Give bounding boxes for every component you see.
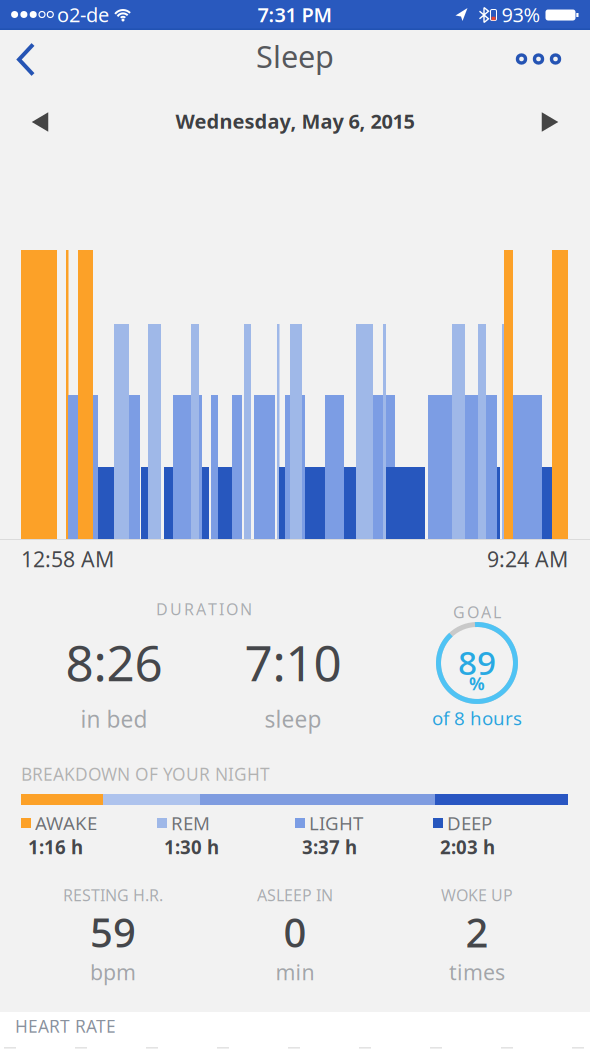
staticText: 1:30 h [164, 835, 219, 859]
staticText: 7:31 PM [257, 1, 332, 28]
button[interactable]: More options [517, 55, 559, 63]
staticText: 0 [283, 905, 306, 958]
staticText: 2 [465, 905, 488, 958]
staticText: BREAKDOWN OF YOUR NIGHT [21, 762, 270, 785]
button[interactable]: Previous day [32, 112, 48, 132]
staticText: % [469, 672, 485, 695]
staticText: Wednesday, May 6, 2015 [175, 108, 414, 134]
staticText: LIGHT [309, 811, 363, 835]
staticText: sleep [264, 704, 321, 734]
staticText: in bed [80, 704, 147, 734]
staticText: G O A L [453, 601, 501, 623]
staticText: 2:03 h [440, 835, 495, 859]
staticText: HEART RATE [15, 1014, 116, 1037]
staticText: RESTING H.R. [63, 884, 163, 906]
button[interactable]: Next day [542, 112, 558, 132]
staticText: times [449, 958, 505, 986]
staticText: D U R A T I O N [156, 598, 252, 620]
staticText: REM [171, 811, 210, 835]
staticText: 89 [458, 640, 496, 684]
staticText: bpm [90, 958, 136, 986]
staticText: Sleep [256, 36, 334, 76]
staticText: 8:26 [65, 629, 162, 695]
staticText: 1:16 h [28, 835, 83, 859]
staticText: min [275, 958, 314, 986]
staticText: ASLEEP IN [257, 884, 333, 906]
staticText: DEEP [447, 811, 492, 835]
staticText: AWAKE [35, 811, 97, 835]
staticText: WOKE UP [441, 884, 513, 906]
staticText: 7:10 [244, 629, 341, 695]
button[interactable]: Back [17, 43, 35, 75]
staticText: 9:24 AM [487, 545, 568, 573]
staticText: 59 [90, 905, 136, 958]
staticText: 3:37 h [302, 835, 357, 859]
staticText: of 8 hours [432, 706, 522, 730]
staticText: 12:58 AM [21, 545, 114, 573]
staticText: 93% [501, 1, 540, 28]
staticText: o2-de [57, 1, 109, 28]
